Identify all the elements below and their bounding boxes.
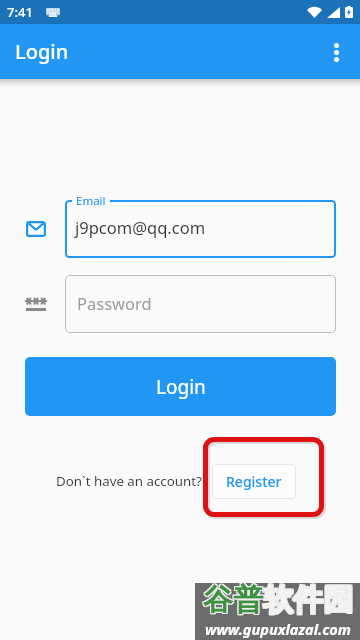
staticText: 谷普软件园: [204, 582, 354, 620]
staticText: 谷普软件园: [204, 580, 354, 618]
staticText: Register: [226, 472, 282, 491]
other: Email: [26, 221, 46, 237]
staticText: 谷普: [203, 581, 263, 619]
staticText: 谷普软件园: [202, 580, 352, 618]
staticText: Don`t have an account?: [56, 472, 202, 490]
button[interactable]: Register: [212, 464, 296, 499]
staticText: 软件园: [263, 581, 353, 619]
staticText: Login: [156, 374, 206, 400]
button[interactable]: Login: [25, 357, 336, 416]
staticText: Password: [77, 292, 152, 314]
staticText: 7:41: [7, 3, 33, 21]
staticText: Login: [15, 38, 69, 65]
button[interactable]: Password: [65, 275, 336, 333]
other: Password: [26, 296, 46, 311]
staticText: j9pcom@qq.com: [75, 216, 206, 238]
staticText: 谷普软件园: [202, 582, 352, 620]
button[interactable]: j9pcom@qq.com: [65, 200, 336, 258]
button[interactable]: More options: [316, 32, 356, 72]
staticText: Email: [76, 193, 106, 209]
staticText: www.gupuxlazal.com: [205, 619, 351, 639]
